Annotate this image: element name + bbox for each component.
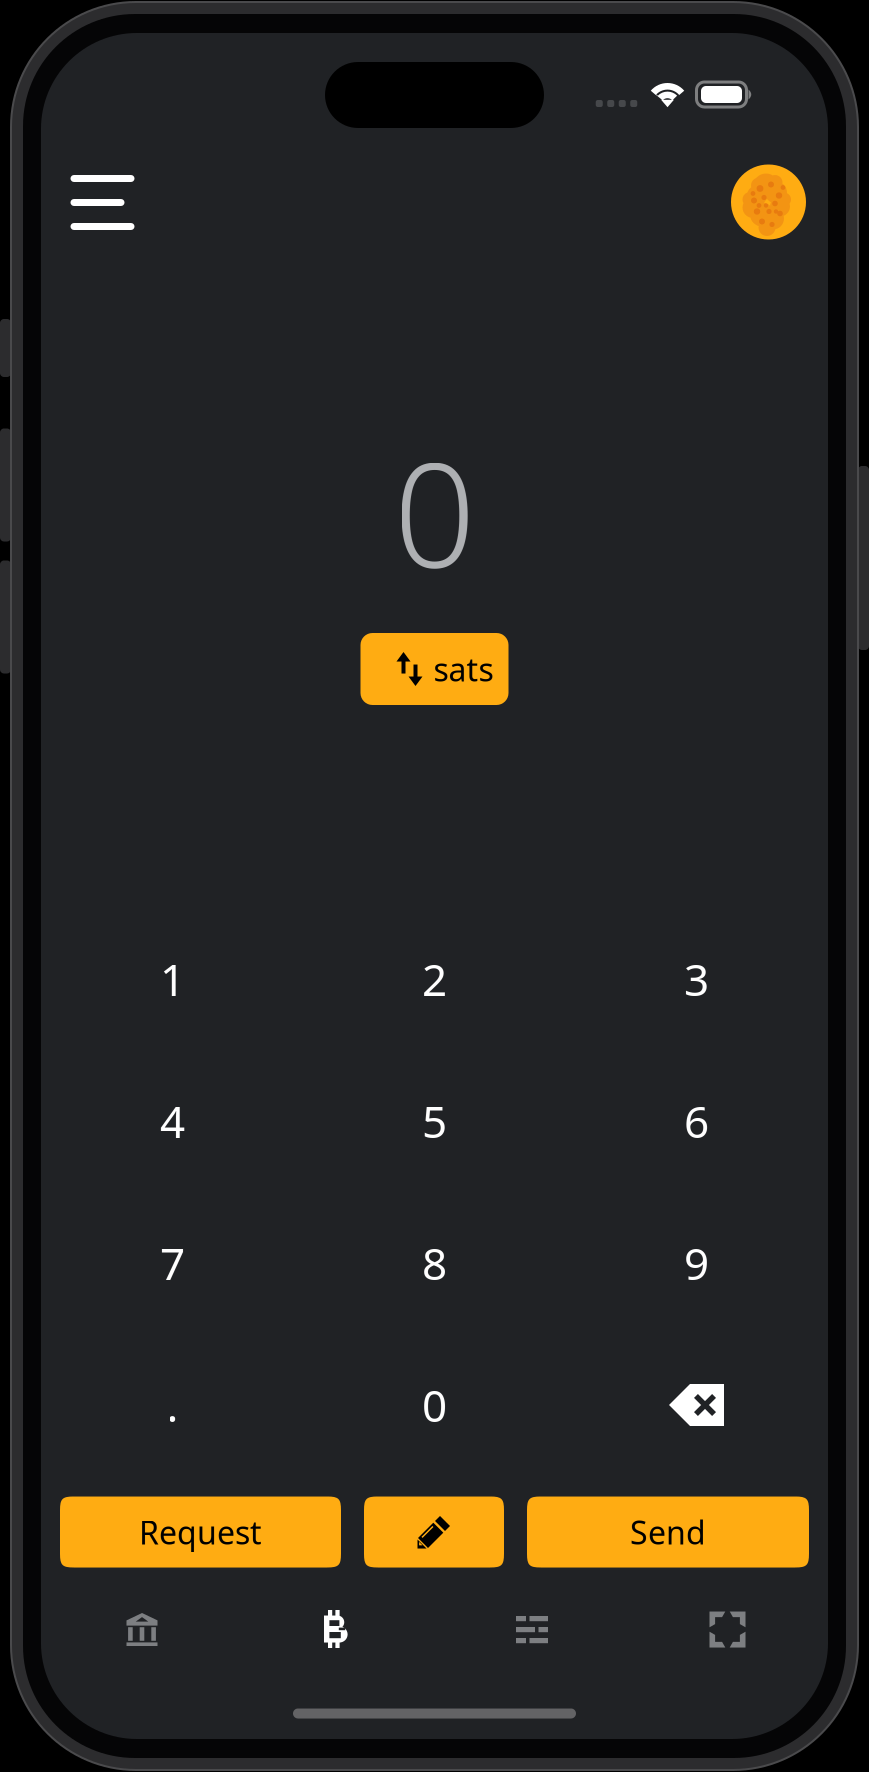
button[interactable]: sats — [360, 633, 508, 705]
staticText: 5 — [422, 1092, 447, 1150]
staticText: 2 — [422, 950, 447, 1008]
button[interactable]: Delete — [565, 1334, 827, 1476]
button[interactable]: 4 — [41, 1050, 303, 1192]
staticText: 9 — [684, 1234, 709, 1292]
staticText: 6 — [684, 1092, 709, 1150]
staticText: Request — [139, 1511, 262, 1553]
staticText: . — [166, 1376, 178, 1434]
staticText: 4 — [160, 1092, 185, 1150]
button[interactable]: Menu — [52, 157, 152, 248]
staticText: 0 — [422, 1376, 447, 1434]
button[interactable]: 5 — [303, 1050, 565, 1192]
button[interactable]: Transactions — [452, 1598, 612, 1660]
button[interactable]: Scan QR code — [647, 1598, 807, 1660]
staticText: 3 — [684, 950, 709, 1008]
button[interactable]: 0 — [303, 1334, 565, 1476]
button[interactable]: Bitcoin wallet — [257, 1598, 417, 1660]
button[interactable]: 2 — [303, 908, 565, 1050]
button[interactable]: . — [41, 1334, 303, 1476]
button[interactable]: Profile — [731, 164, 806, 239]
staticText: 1 — [160, 950, 185, 1008]
button[interactable]: Accounts — [62, 1598, 222, 1660]
button[interactable]: 7 — [41, 1192, 303, 1334]
staticText: 0 — [393, 416, 475, 608]
button[interactable]: 9 — [565, 1192, 827, 1334]
button[interactable]: Add note — [364, 1496, 504, 1567]
button[interactable]: Send — [527, 1496, 809, 1567]
button[interactable]: Request — [60, 1496, 341, 1567]
staticText: Send — [630, 1511, 706, 1553]
staticText: 8 — [422, 1234, 447, 1292]
button[interactable]: 6 — [565, 1050, 827, 1192]
button[interactable]: 3 — [565, 908, 827, 1050]
button[interactable]: 8 — [303, 1192, 565, 1334]
button[interactable]: 1 — [41, 908, 303, 1050]
staticText: sats — [433, 648, 493, 690]
staticText: 7 — [160, 1234, 185, 1292]
